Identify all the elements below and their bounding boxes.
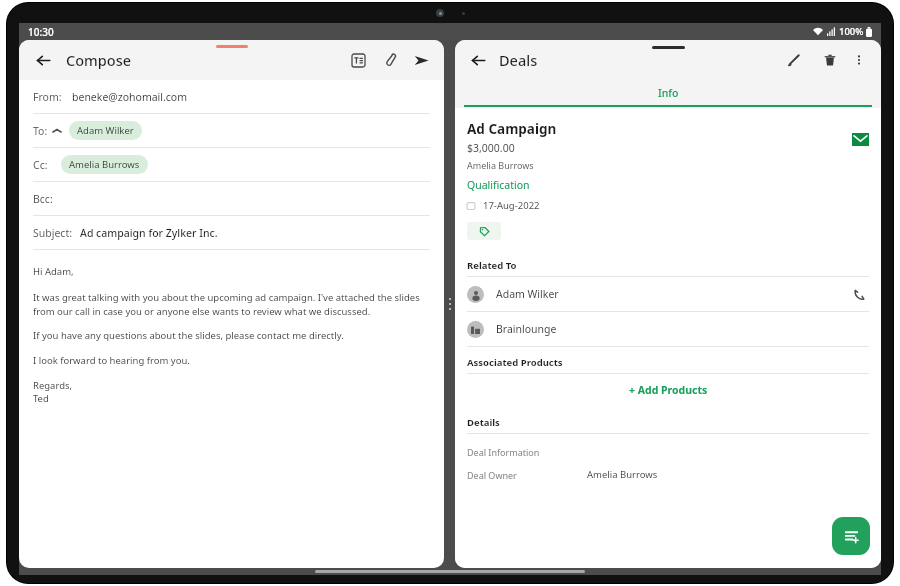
button[interactable]: Attach file	[378, 48, 402, 72]
button[interactable]: Cc:	[19, 148, 444, 181]
staticText: Info	[658, 86, 679, 100]
button[interactable]: Delete	[818, 48, 842, 72]
staticText: Adam Wilker	[496, 287, 559, 301]
staticText: Details	[467, 416, 500, 429]
button[interactable]: From:	[19, 80, 444, 113]
staticText: From:	[33, 90, 62, 104]
staticText: Deal Owner	[467, 469, 587, 481]
staticText: Cc:	[33, 158, 48, 172]
staticText: Bcc:	[33, 192, 53, 206]
staticText: Ad campaign for Zylker Inc.	[80, 226, 218, 240]
staticText: 17-Aug-2022	[483, 199, 540, 212]
button[interactable]: Back	[30, 47, 56, 73]
button[interactable]: Brainlounge	[455, 312, 881, 346]
staticText: Deal Information	[467, 446, 540, 458]
button[interactable]: Send	[409, 48, 433, 72]
button[interactable]: Adam Wilker	[69, 121, 142, 140]
button[interactable]: More options	[849, 50, 869, 70]
staticText: Amelia Burrows	[467, 159, 534, 171]
staticText: Amelia Burrows	[69, 158, 140, 171]
button[interactable]: Back	[465, 47, 491, 73]
staticText: Deals	[499, 50, 538, 70]
staticText: Brainlounge	[496, 322, 557, 336]
staticText: beneke@zohomail.com	[72, 90, 188, 104]
staticText: Ted	[33, 392, 49, 405]
button[interactable]: Amelia Burrows	[61, 155, 148, 174]
button[interactable]: Call	[849, 284, 869, 304]
button[interactable]: Subject:	[19, 216, 444, 249]
button[interactable]: Tags	[467, 222, 501, 240]
button[interactable]: To:	[19, 114, 444, 147]
staticText: + Add Products	[629, 383, 708, 397]
staticText: If you have any questions about the slid…	[33, 329, 344, 342]
staticText: $3,000.00	[467, 141, 515, 155]
staticText: Subject:	[33, 226, 72, 240]
staticText: I look forward to hearing from you.	[33, 354, 190, 367]
button[interactable]: Adam Wilker	[455, 277, 881, 311]
staticText: It was great talking with you about the …	[33, 291, 428, 318]
staticText: Ad Campaign	[467, 120, 557, 138]
button[interactable]: Rich text	[346, 48, 370, 72]
staticText: Amelia Burrows	[587, 468, 658, 481]
staticText: Compose	[66, 50, 132, 70]
staticText: Associated Products	[467, 356, 563, 369]
staticText: 10:30	[28, 25, 54, 39]
staticText: Hi Adam,	[33, 265, 74, 278]
staticText: To:	[33, 124, 48, 138]
staticText: 100%	[839, 25, 864, 38]
button[interactable]: Bcc:	[19, 182, 444, 215]
button[interactable]: Info	[455, 80, 881, 107]
staticText: Adam Wilker	[77, 124, 134, 137]
button[interactable]: Edit	[782, 48, 806, 72]
staticText: Regards,	[33, 379, 73, 392]
staticText: Related To	[467, 259, 517, 272]
button[interactable]: Add note	[832, 517, 870, 555]
button[interactable]: Send email	[852, 133, 869, 146]
staticText: Qualification	[467, 178, 530, 192]
button[interactable]: + Add Products	[455, 374, 881, 405]
